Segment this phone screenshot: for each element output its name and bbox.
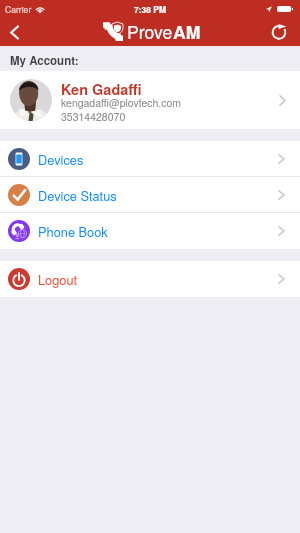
staticText: AM	[173, 19, 201, 44]
staticText: 35314428070	[61, 109, 126, 124]
staticText: 7:38 PM	[134, 3, 167, 15]
button[interactable]: Devices	[0, 141, 300, 177]
staticText: kengadaffi@plovtech.com	[61, 95, 182, 110]
button[interactable]: Back	[0, 18, 30, 46]
staticText: Ken Gadaffi	[61, 79, 142, 100]
staticText: Logout	[38, 270, 278, 288]
button[interactable]: Refresh	[264, 18, 294, 46]
button[interactable]: Phone Book	[0, 213, 300, 249]
staticText: Device Status	[38, 186, 278, 204]
button[interactable]: Logout	[0, 261, 300, 297]
staticText: Devices	[38, 150, 278, 168]
button[interactable]: Ken Gadaffi	[0, 71, 300, 129]
staticText: Prove	[127, 19, 173, 44]
button[interactable]: Device Status	[0, 177, 300, 213]
staticText: My Account:	[10, 52, 79, 68]
staticText: Carrier	[5, 3, 32, 15]
staticText: Phone Book	[38, 222, 278, 240]
